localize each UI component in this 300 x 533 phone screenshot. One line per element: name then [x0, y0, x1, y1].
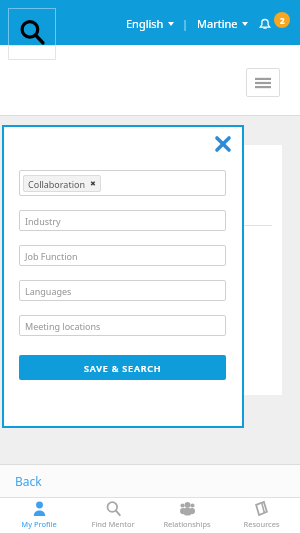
staticText: Languages [25, 285, 72, 297]
staticText: Job Function [25, 250, 78, 262]
button[interactable]: Martine [195, 12, 250, 35]
button[interactable]: Languages [19, 280, 226, 301]
staticText: Collaboration [28, 178, 85, 190]
staticText: Industry [25, 215, 61, 227]
staticText: ✖ [90, 180, 96, 188]
button[interactable]: Resources [226, 497, 296, 533]
button[interactable]: Collaboration [19, 170, 226, 196]
button[interactable]: Find Mentor [78, 497, 148, 533]
staticText: Find Mentor [91, 519, 135, 529]
button[interactable]: Search [8, 8, 56, 60]
button[interactable]: Back [0, 465, 300, 497]
staticText: | [182, 16, 189, 31]
staticText: Back [15, 473, 42, 489]
button[interactable]: Notifications [258, 10, 292, 36]
staticText: English, Communication, [28, 242, 145, 256]
staticText: Meeting locations [25, 320, 101, 332]
button[interactable]: English [124, 12, 176, 35]
staticText: Martine [197, 16, 238, 31]
staticText: New York, United States [28, 195, 141, 209]
staticText: Relationships [163, 519, 211, 529]
staticText: SAVE & SEARCH [84, 362, 162, 374]
button[interactable]: Industry [19, 210, 226, 231]
staticText: 2 [280, 15, 285, 26]
button[interactable]: Job Function [19, 245, 226, 266]
staticText: English [126, 16, 164, 31]
button[interactable]: SAVE & SEARCH [19, 355, 226, 380]
button[interactable]: Menu [246, 68, 280, 97]
button[interactable]: Close [210, 131, 236, 157]
button[interactable]: Relationships [152, 497, 222, 533]
button[interactable]: Meeting locations [19, 315, 226, 336]
staticText: My Profile [21, 519, 57, 529]
staticText: Resources [243, 519, 280, 529]
staticText: Business Development [28, 169, 136, 183]
button[interactable]: My Profile [4, 497, 74, 533]
